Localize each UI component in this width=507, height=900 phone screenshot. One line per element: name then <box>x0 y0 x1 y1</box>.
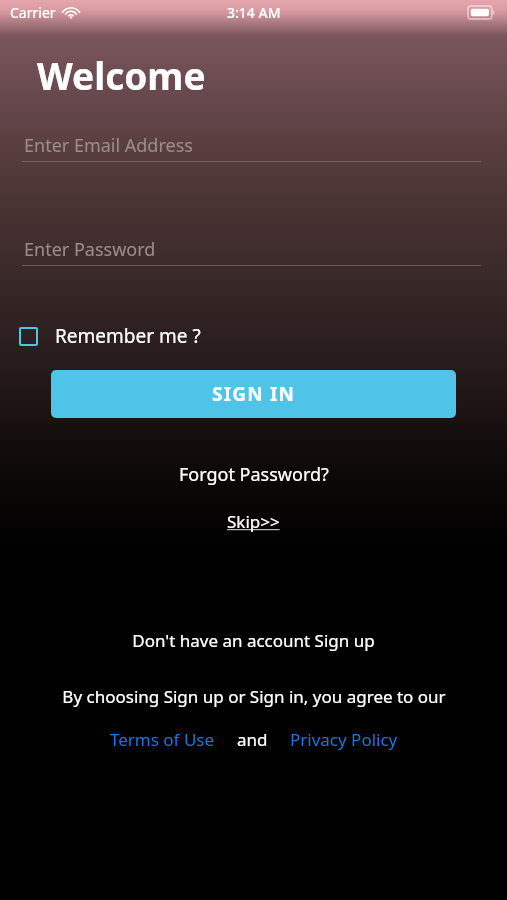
button[interactable]: Forgot Password? <box>169 458 339 491</box>
staticText: Remember me ? <box>55 323 201 349</box>
staticText: Enter Password <box>24 237 156 262</box>
staticText: Forgot Password? <box>179 462 329 487</box>
staticText: Enter Email Address <box>24 133 193 158</box>
staticText: Welcome <box>37 50 206 100</box>
button[interactable]: Remember me ? <box>12 317 208 355</box>
staticText: By choosing Sign up or Sign in, you agre… <box>62 685 446 708</box>
staticText: 3:14 AM <box>227 3 281 22</box>
staticText: and <box>237 728 268 751</box>
button[interactable]: Privacy Policy <box>286 725 402 754</box>
button[interactable]: Skip>> <box>217 506 290 537</box>
staticText: Privacy Policy <box>290 728 398 751</box>
staticText: Carrier <box>10 3 56 22</box>
staticText: SIGN IN <box>212 381 296 407</box>
staticText: Terms of Use <box>110 728 215 751</box>
button[interactable]: SIGN IN <box>51 370 456 418</box>
staticText: Don't have an account Sign up <box>132 629 375 652</box>
button[interactable]: Terms of Use <box>106 725 219 754</box>
button[interactable]: Enter Email Address <box>22 128 481 162</box>
button[interactable]: Enter Password <box>22 232 481 266</box>
button[interactable]: Don't have an account Sign up <box>122 626 385 655</box>
staticText: Skip>> <box>227 510 280 533</box>
